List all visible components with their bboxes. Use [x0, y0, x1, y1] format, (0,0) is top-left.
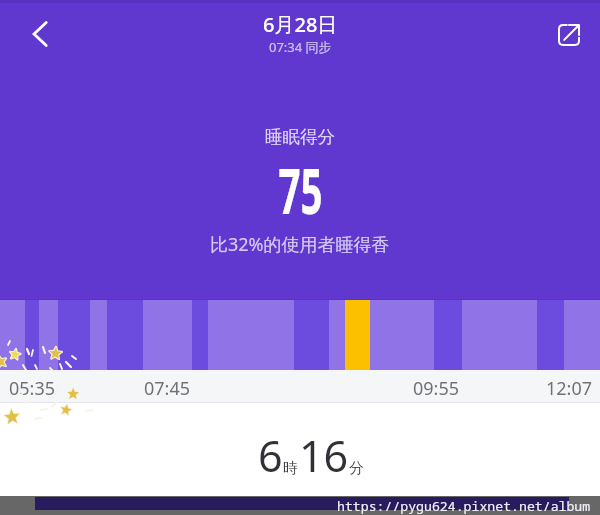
staticText: 07:45 — [144, 376, 191, 401]
staticText: 09:55 — [413, 376, 460, 401]
staticText: 07:34 同步 — [269, 38, 332, 56]
staticText: 比32%的使用者睡得香 — [210, 232, 390, 257]
staticText: 75 — [278, 147, 322, 233]
staticText: 6 — [258, 426, 283, 485]
staticText: 6月28日 — [263, 11, 338, 38]
staticText: 睡眠得分 — [265, 126, 335, 148]
staticText: https://pygu624.pixnet.net/album — [337, 497, 591, 515]
staticText: 05:35 — [9, 376, 56, 401]
staticText: 12:07 — [546, 376, 593, 401]
staticText: 16 — [299, 426, 349, 485]
button[interactable]: Back — [17, 11, 63, 57]
button[interactable]: Share — [546, 12, 592, 58]
staticText: 分 — [349, 459, 364, 478]
staticText: 時 — [283, 459, 298, 478]
